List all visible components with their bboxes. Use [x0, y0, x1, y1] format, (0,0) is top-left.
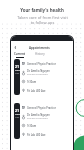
- staticText: Fit Lab 400 Ave: [27, 133, 46, 137]
- button[interactable]: 9:30am: [22, 77, 71, 86]
- button[interactable]: General Physio Practice: [22, 103, 71, 112]
- staticText: 21: [15, 108, 20, 113]
- button[interactable]: Dr. Amelia Nguyen: [22, 68, 71, 77]
- staticText: Wed: [15, 69, 20, 72]
- staticText: General Physio Practice: [27, 106, 57, 110]
- staticText: Practice Consultant: [27, 117, 48, 120]
- staticText: Appointments: [29, 46, 50, 50]
- button[interactable]: Dr. Amelia Nguyen: [22, 112, 71, 121]
- staticText: 9:30am: [27, 124, 37, 128]
- button[interactable]: Fit Lab 400 Ave: [22, 86, 71, 95]
- staticText: Practice Consultant: [27, 73, 48, 76]
- staticText: Dr. Amelia Nguyen: [27, 113, 50, 117]
- staticText: 21: [15, 64, 20, 69]
- button[interactable]: General Physio Practice: [22, 59, 71, 68]
- staticText: Fit Lab 400 Ave: [27, 89, 46, 93]
- staticText: General Physio Practice: [27, 62, 57, 66]
- staticText: Dr. Amelia Nguyen: [27, 69, 50, 73]
- staticText: Nov: [15, 116, 20, 119]
- staticText: Taken care of from first visit to follow…: [17, 15, 68, 25]
- staticText: Your family's health: [20, 7, 64, 13]
- button[interactable]: Back: [13, 45, 18, 50]
- button[interactable]: Current: [14, 52, 26, 56]
- staticText: Wed: [15, 113, 20, 116]
- button[interactable]: 9:30am: [22, 121, 71, 130]
- button[interactable]: History: [35, 52, 45, 56]
- staticText: Nov: [15, 72, 20, 75]
- button[interactable]: Fit Lab 400 Ave: [22, 130, 71, 139]
- staticText: 9:30am: [27, 80, 37, 84]
